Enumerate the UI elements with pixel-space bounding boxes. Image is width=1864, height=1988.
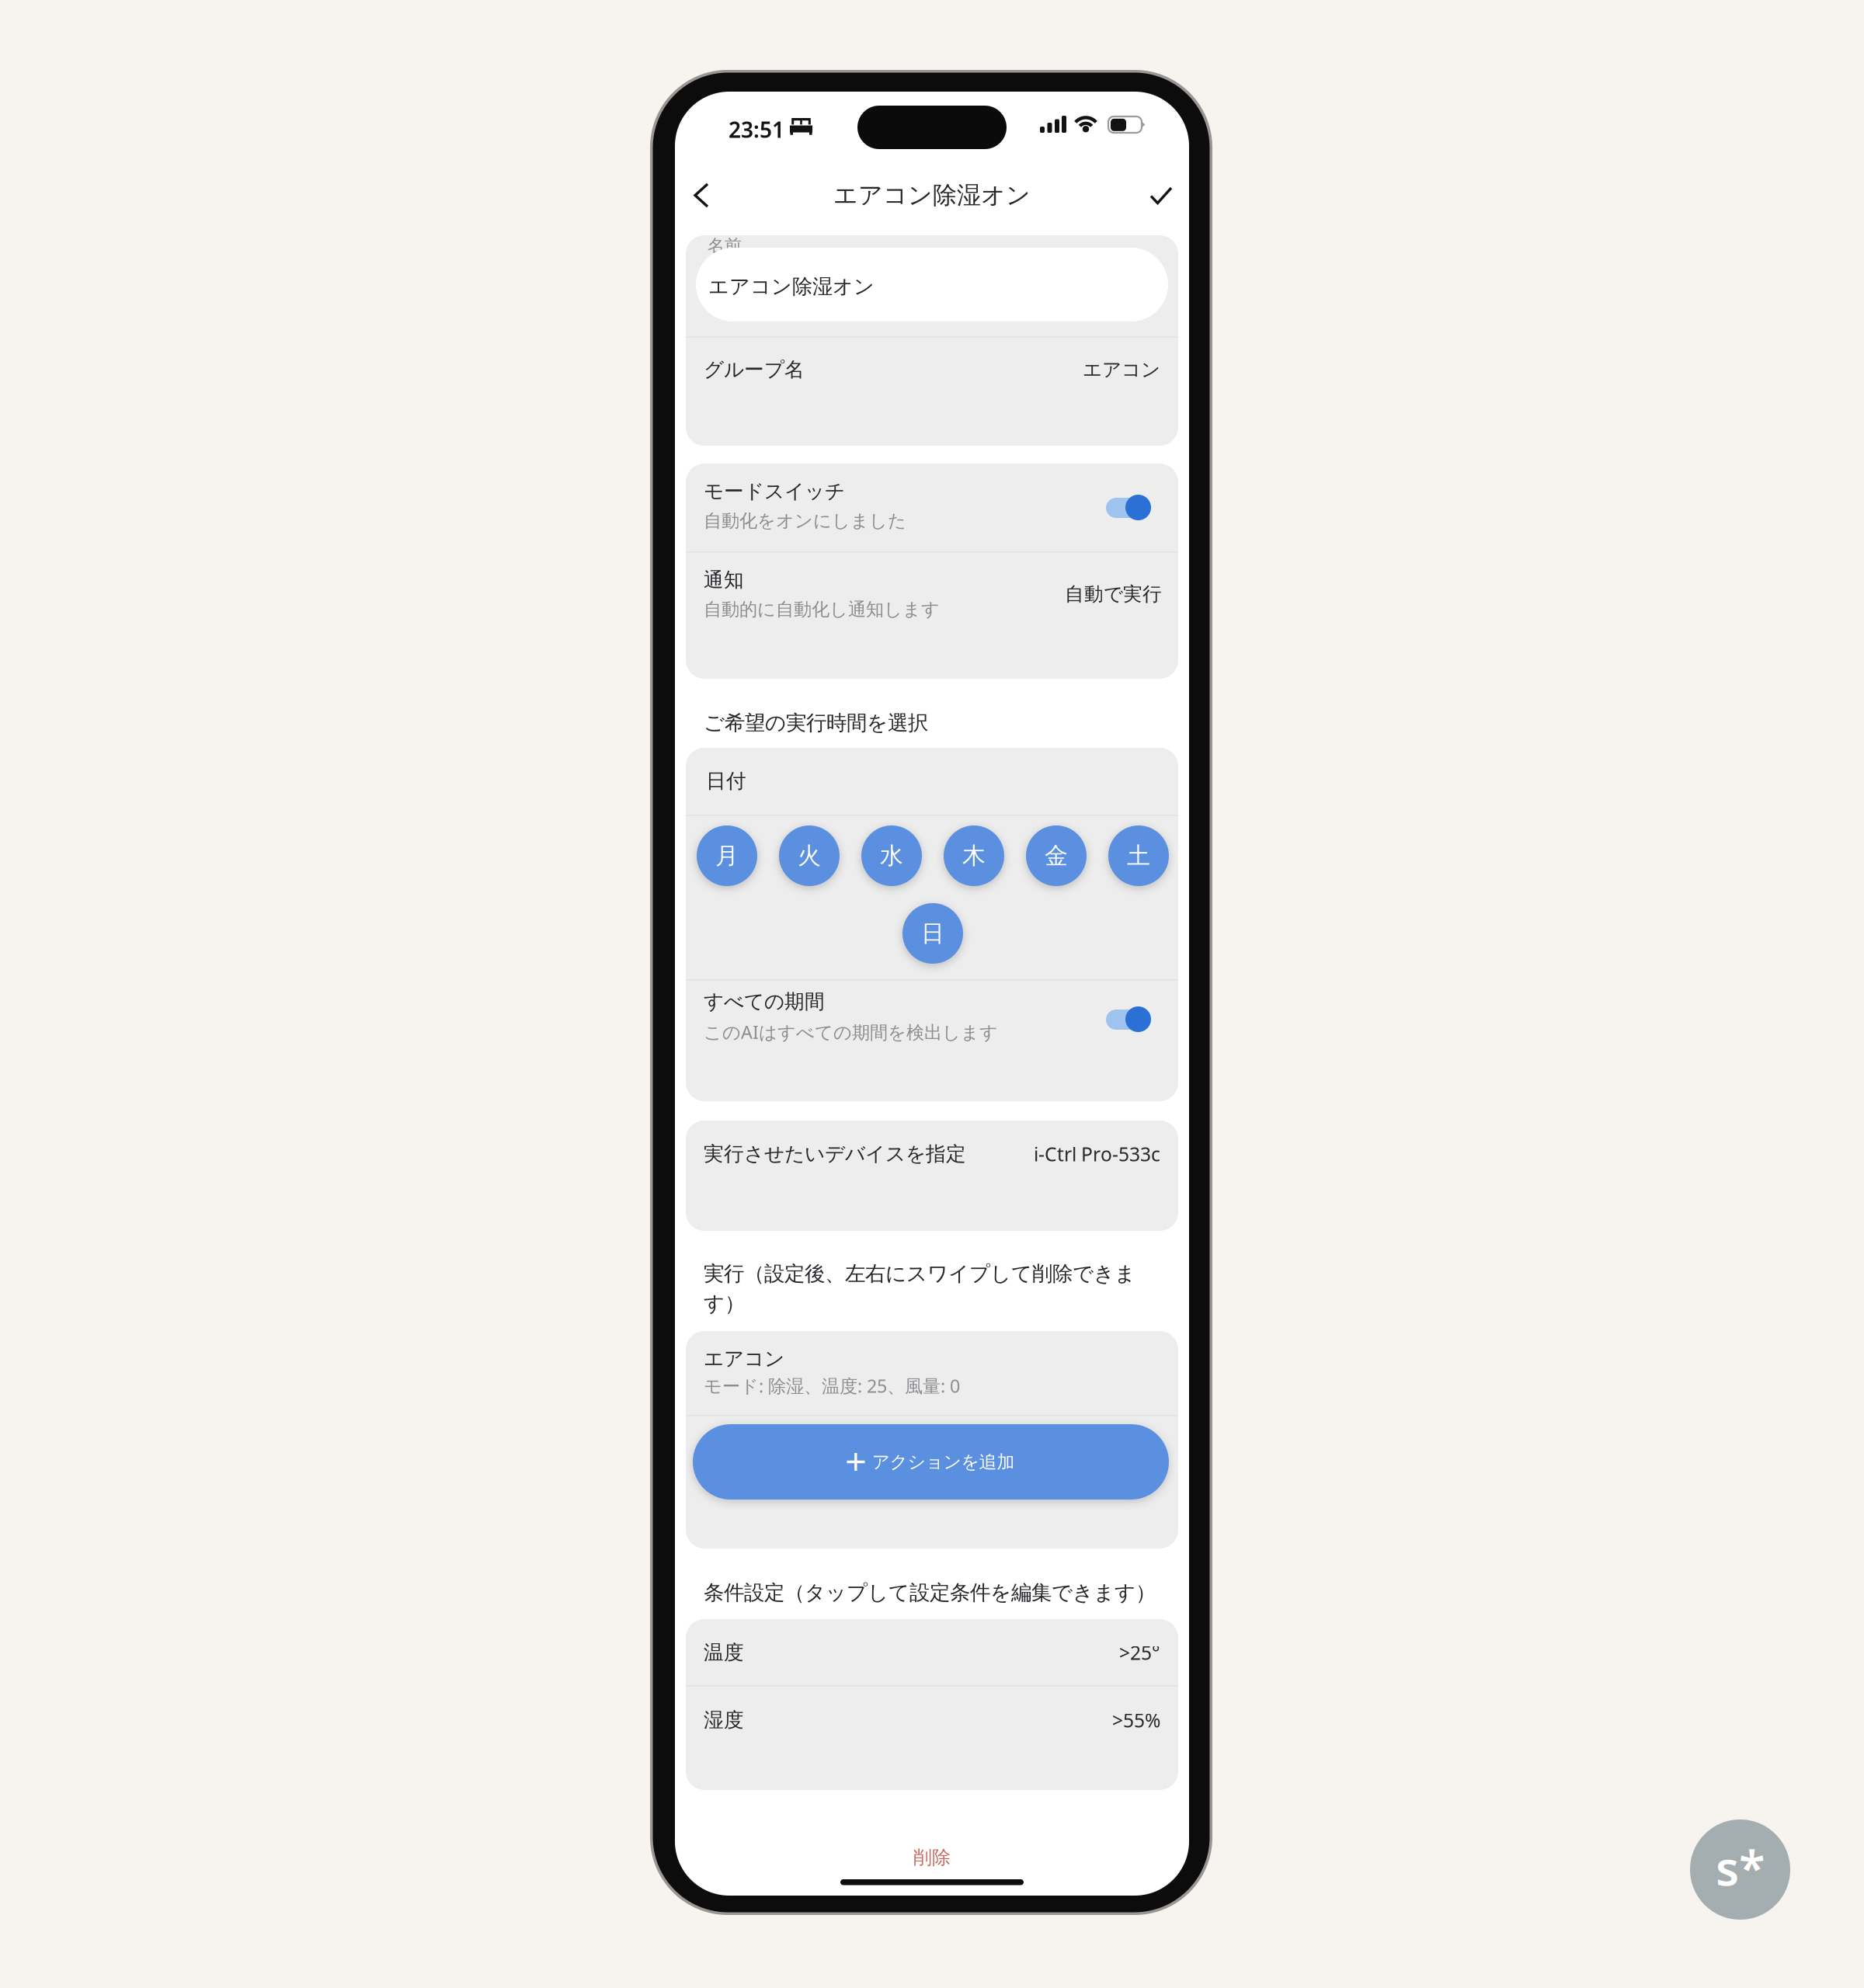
button[interactable]: 戻る	[681, 171, 722, 220]
staticText: エアコン除湿オン	[708, 274, 875, 299]
staticText: >25°	[1119, 1640, 1160, 1665]
staticText: i-Ctrl Pro-533c	[1034, 1141, 1160, 1167]
staticText: 湿度	[704, 1708, 744, 1732]
staticText: 水	[880, 842, 903, 870]
staticText: エアコン	[1083, 358, 1160, 381]
button[interactable]: 水	[861, 825, 922, 886]
button[interactable]: 火	[779, 825, 840, 886]
staticText: s*	[1716, 1836, 1765, 1899]
button[interactable]: 月	[697, 825, 757, 886]
button[interactable]: モードスイッチ	[686, 479, 1178, 538]
staticText: >55%	[1112, 1707, 1160, 1733]
staticText: すべての期間	[704, 989, 825, 1014]
staticText: 日	[921, 919, 944, 948]
staticText: 日付	[706, 769, 746, 793]
button[interactable]: 通知	[686, 568, 1178, 627]
button[interactable]: アクションを追加	[693, 1424, 1169, 1500]
button[interactable]: 日	[902, 903, 963, 964]
staticText: グループ名	[704, 357, 805, 382]
button[interactable]: 土	[1108, 825, 1169, 886]
button[interactable]: 実行させたいデバイスを指定	[686, 1130, 1178, 1178]
button[interactable]: すべての期間	[686, 989, 1178, 1048]
staticText: 削除	[913, 1846, 951, 1869]
staticText: 木	[962, 842, 986, 870]
staticText: モードスイッチ	[704, 479, 845, 504]
staticText: エアコン	[704, 1347, 784, 1371]
button[interactable]: 保存	[1138, 175, 1184, 217]
staticText: 月	[715, 842, 739, 870]
button[interactable]: 湿度	[686, 1696, 1178, 1744]
staticText: 自動的に自動化し通知します	[704, 598, 940, 620]
staticText: 土	[1127, 842, 1150, 870]
button[interactable]: 金	[1026, 825, 1087, 886]
staticText: 名前	[708, 235, 742, 256]
button[interactable]: 温度	[686, 1628, 1178, 1677]
staticText: 自動化をオンにしました	[704, 510, 906, 532]
staticText: 実行（設定後、左右にスワイプして削除できま	[704, 1261, 1135, 1286]
staticText: 温度	[704, 1640, 744, 1665]
staticText: 金	[1045, 842, 1068, 870]
button[interactable]: 削除	[675, 1837, 1189, 1878]
staticText: アクションを追加	[872, 1451, 1015, 1473]
staticText: 実行させたいデバイスを指定	[704, 1142, 966, 1166]
button[interactable]: グループ名	[686, 346, 1178, 394]
staticText: 火	[798, 842, 821, 870]
staticText: 通知	[704, 568, 744, 592]
staticText: す）	[704, 1291, 745, 1316]
staticText: 23:51	[729, 115, 784, 144]
staticText: モード: 除湿、温度: 25、風量: 0	[704, 1374, 960, 1398]
staticText: 条件設定（タップして設定条件を編集できます）	[704, 1580, 1156, 1605]
staticText: ご希望の実行時間を選択	[704, 710, 928, 736]
staticText: エアコン除湿オン	[833, 181, 1031, 210]
staticText: 自動で実行	[1065, 582, 1162, 606]
staticText: このAIはすべての期間を検出します	[704, 1020, 998, 1044]
button[interactable]: 木	[944, 825, 1004, 886]
